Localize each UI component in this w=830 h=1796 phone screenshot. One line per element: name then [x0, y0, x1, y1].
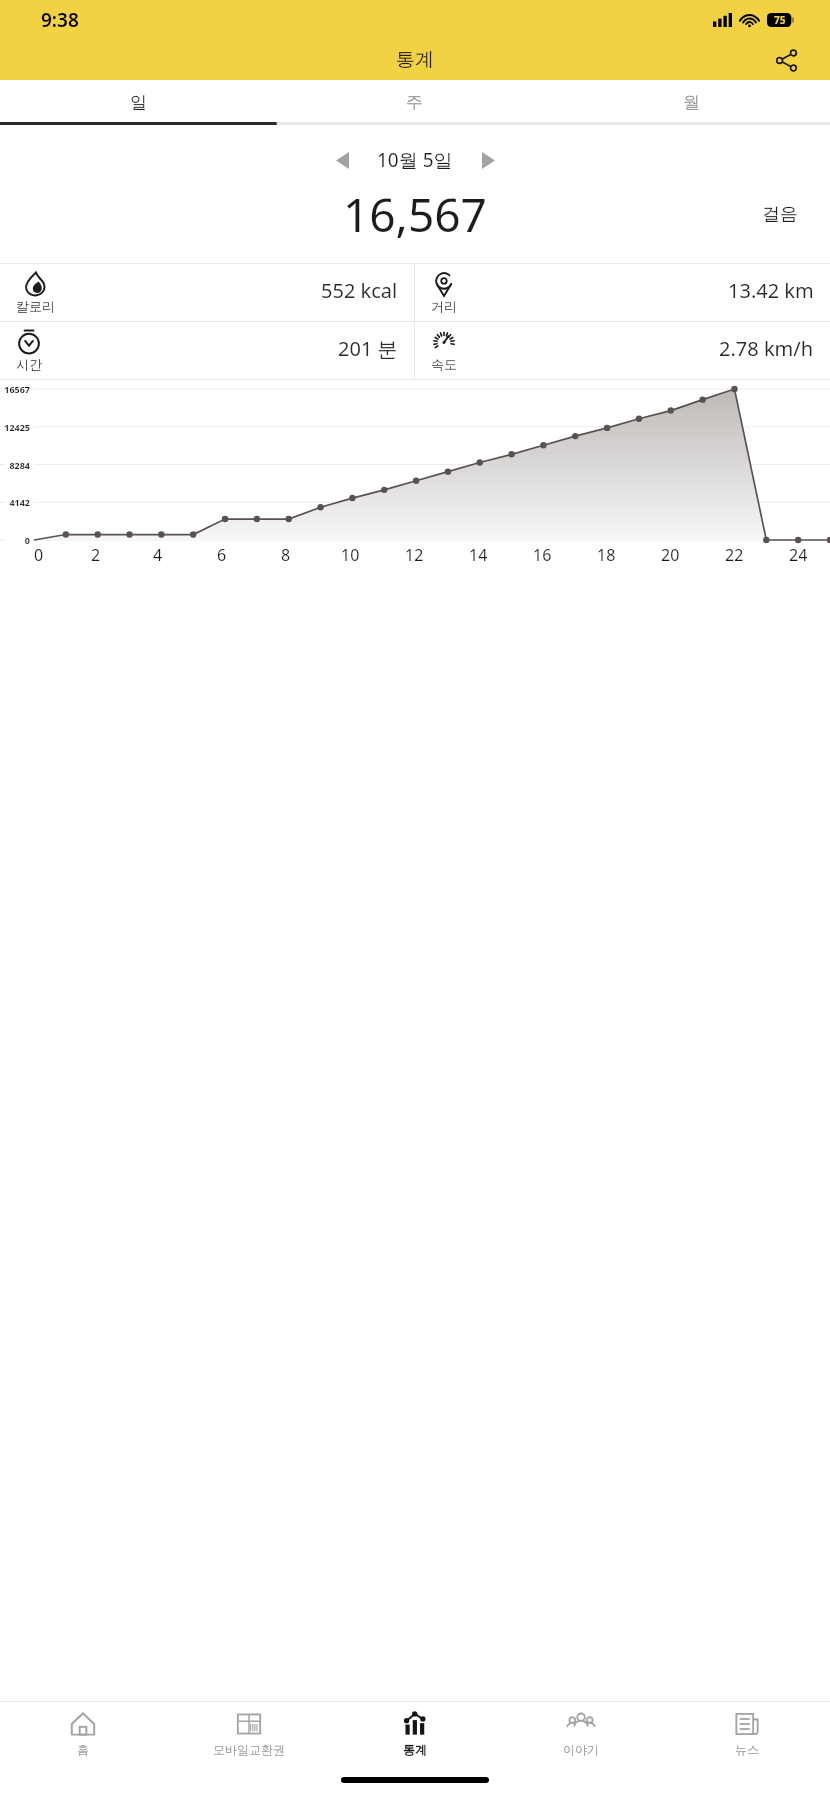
- button[interactable]: 주: [276, 80, 553, 125]
- button[interactable]: 모바일교환권: [166, 1702, 332, 1764]
- staticText: 홈: [77, 1742, 89, 1757]
- staticText: 6: [217, 544, 227, 566]
- button[interactable]: 거리: [415, 264, 830, 321]
- staticText: 14: [469, 544, 488, 566]
- staticText: 8: [281, 544, 291, 566]
- staticText: 22: [725, 544, 744, 566]
- staticText: 20: [661, 544, 680, 566]
- staticText: 4142: [0, 496, 30, 508]
- staticText: 4: [153, 544, 163, 566]
- staticText: 뉴스: [735, 1742, 759, 1757]
- staticText: 12425: [0, 421, 30, 433]
- button[interactable]: 홈: [0, 1702, 166, 1764]
- button[interactable]: 통계: [332, 1702, 498, 1764]
- staticText: 0: [34, 544, 44, 566]
- staticText: 주: [406, 92, 423, 113]
- button[interactable]: 시간: [0, 322, 414, 379]
- staticText: 거리: [431, 298, 457, 314]
- staticText: 10: [341, 544, 360, 566]
- staticText: 24: [789, 544, 808, 566]
- staticText: 모바일교환권: [213, 1742, 285, 1757]
- staticText: 9:38: [41, 7, 79, 33]
- staticText: 16567: [0, 383, 30, 395]
- staticText: 월: [683, 92, 700, 113]
- staticText: 13.42 km: [728, 277, 814, 304]
- staticText: 통계: [403, 1742, 427, 1757]
- button[interactable]: Next day: [471, 143, 505, 177]
- staticText: 8284: [0, 459, 30, 471]
- button[interactable]: Previous day: [325, 143, 359, 177]
- staticText: 2.78 km/h: [719, 335, 814, 362]
- staticText: 속도: [431, 356, 457, 372]
- button[interactable]: 일: [0, 80, 276, 125]
- staticText: 0: [0, 534, 30, 546]
- button[interactable]: 월: [553, 80, 830, 125]
- staticText: 칼로리: [16, 298, 55, 314]
- button[interactable]: 이야기: [498, 1702, 664, 1764]
- staticText: 16: [533, 544, 552, 566]
- staticText: 75: [774, 13, 786, 27]
- staticText: 시간: [16, 356, 42, 372]
- staticText: 10월 5일: [377, 147, 453, 173]
- staticText: 이야기: [563, 1742, 599, 1757]
- button[interactable]: 뉴스: [664, 1702, 830, 1764]
- button[interactable]: Share: [766, 40, 806, 80]
- button[interactable]: 속도: [415, 322, 830, 379]
- staticText: 12: [405, 544, 424, 566]
- staticText: 16,567: [343, 183, 487, 245]
- staticText: 18: [597, 544, 616, 566]
- staticText: 일: [130, 92, 147, 113]
- staticText: 201 분: [338, 335, 398, 362]
- staticText: 통계: [396, 48, 434, 72]
- staticText: 2: [91, 544, 101, 566]
- button[interactable]: 칼로리: [0, 264, 414, 321]
- staticText: 걸음: [762, 203, 798, 226]
- staticText: 552 kcal: [321, 277, 398, 304]
